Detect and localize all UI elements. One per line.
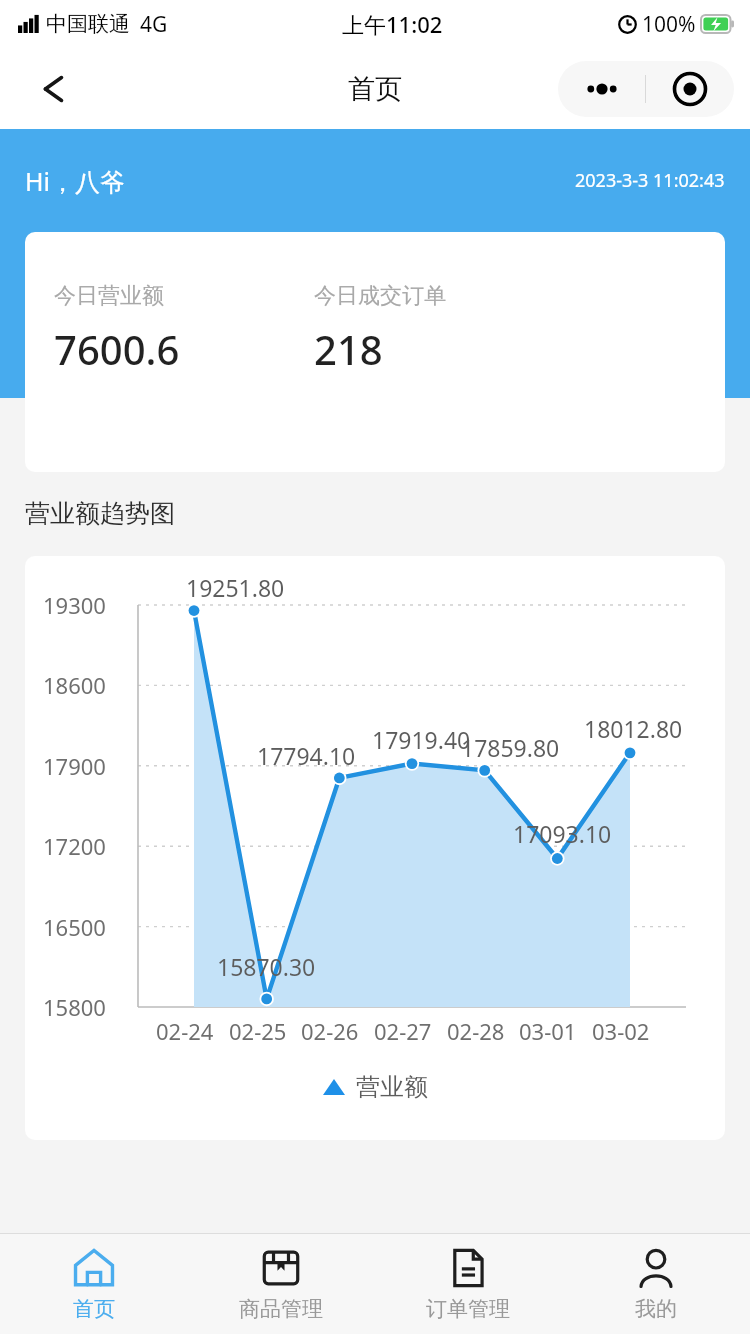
staticText: 16500 <box>43 912 106 942</box>
staticText: 17900 <box>43 751 106 781</box>
staticText: 18600 <box>43 670 106 700</box>
button[interactable]: 今日营业额 <box>25 232 725 472</box>
staticText: 03-01 <box>519 1016 577 1046</box>
staticText: 订单管理 <box>426 1296 510 1322</box>
staticText: 我的 <box>635 1296 677 1322</box>
staticText: 17919.40 <box>372 724 471 755</box>
button[interactable]: 商品管理 <box>187 1234 374 1334</box>
button[interactable]: 订单管理 <box>374 1234 562 1334</box>
staticText: 2023-3-3 11:02:43 <box>575 168 725 193</box>
staticText: 4G <box>140 10 168 39</box>
staticText: 02-25 <box>229 1016 287 1046</box>
staticText: 商品管理 <box>239 1296 323 1322</box>
staticText: 100% <box>642 10 696 39</box>
staticText: 17200 <box>43 831 106 861</box>
staticText: 15800 <box>43 992 106 1022</box>
staticText: 218 <box>314 322 383 376</box>
staticText: 17794.10 <box>257 740 356 771</box>
staticText: 首页 <box>73 1296 115 1322</box>
staticText: Hi，八爷 <box>25 164 125 198</box>
button[interactable]: Back <box>22 63 74 115</box>
staticText: 今日成交订单 <box>314 282 446 310</box>
button[interactable]: Close <box>646 61 734 117</box>
staticText: 首页 <box>348 72 402 106</box>
staticText: 02-27 <box>374 1016 432 1046</box>
staticText: 营业额趋势图 <box>25 498 175 529</box>
staticText: 17859.80 <box>461 732 560 763</box>
button[interactable]: 我的 <box>562 1234 750 1334</box>
staticText: 02-26 <box>301 1016 359 1046</box>
staticText: 19300 <box>43 590 106 620</box>
staticText: 今日营业额 <box>54 282 164 310</box>
staticText: 18012.80 <box>584 713 683 744</box>
button[interactable]: 19300 <box>25 556 725 1140</box>
button[interactable]: 首页 <box>0 1234 187 1334</box>
staticText: 02-28 <box>447 1016 505 1046</box>
staticText: 上午11:02 <box>342 9 443 39</box>
staticText: 17093.10 <box>513 818 612 849</box>
staticText: 19251.80 <box>186 572 285 603</box>
staticText: 营业额 <box>356 1072 428 1102</box>
staticText: 15870.30 <box>217 951 316 982</box>
button[interactable]: More <box>558 61 645 117</box>
button[interactable]: 营业额 <box>322 1072 428 1102</box>
staticText: 7600.6 <box>54 322 180 376</box>
staticText: 中国联通 <box>46 11 130 37</box>
staticText: 03-02 <box>592 1016 650 1046</box>
staticText: 02-24 <box>156 1016 214 1046</box>
